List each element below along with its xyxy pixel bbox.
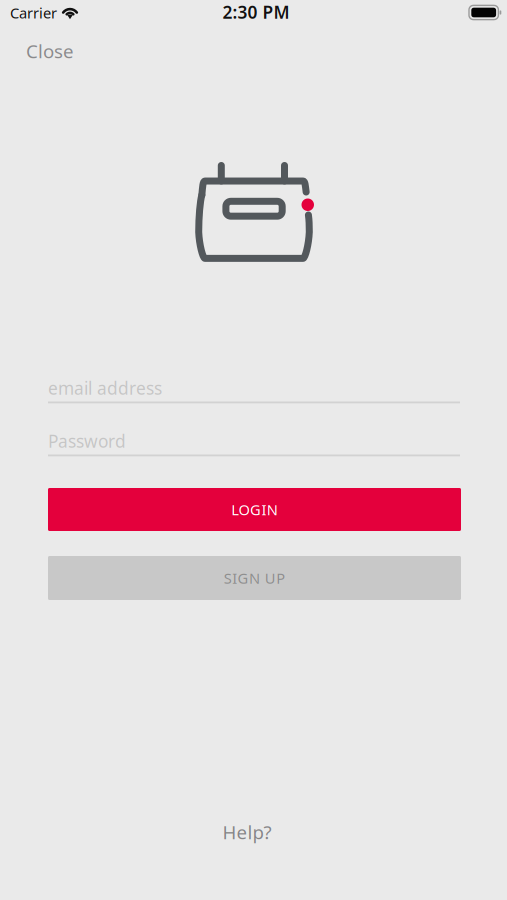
staticText: email address — [48, 376, 162, 399]
staticText: Close — [26, 39, 74, 63]
button[interactable]: LOGIN — [48, 488, 461, 531]
staticText: SIGN UP — [224, 568, 285, 588]
button[interactable]: Help? — [187, 814, 307, 850]
staticText: Help? — [222, 820, 271, 844]
staticText: Carrier — [10, 3, 57, 22]
staticText: Password — [48, 429, 126, 452]
staticText: LOGIN — [231, 500, 278, 519]
button[interactable]: SIGN UP — [48, 556, 461, 600]
button[interactable]: Close — [26, 31, 96, 71]
staticText: 2:30 PM — [222, 0, 289, 23]
